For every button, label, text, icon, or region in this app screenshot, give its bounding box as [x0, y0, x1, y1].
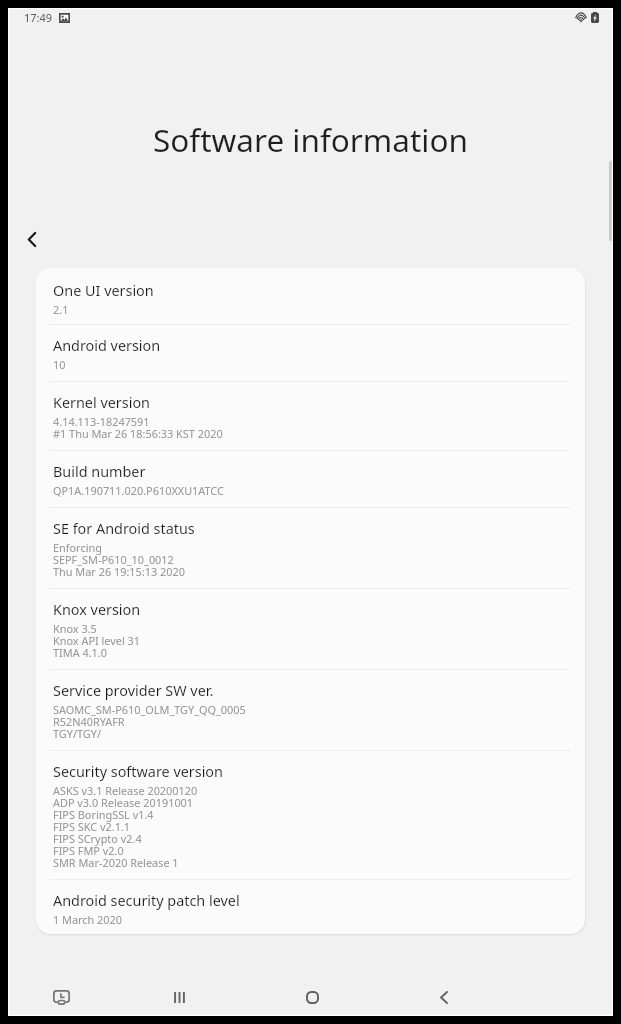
staticText: 10	[53, 357, 66, 372]
button[interactable]: Kernel version	[36, 382, 585, 451]
staticText: Knox version	[53, 600, 141, 620]
staticText: 4.14.113-18247591 #1 Thu Mar 26 18:56:33…	[53, 414, 223, 441]
staticText: QP1A.190711.020.P610XXU1ATCC	[53, 483, 224, 498]
staticText: 2.1	[53, 302, 69, 317]
staticText: 17:49	[24, 10, 53, 25]
button[interactable]: Home	[288, 973, 336, 1021]
staticText: Enforcing SEPF_SM-P610_10_0012 Thu Mar 2…	[53, 540, 185, 579]
staticText: SAOMC_SM-P610_OLM_TGY_QQ_0005 R52N40RYAF…	[53, 702, 246, 741]
button[interactable]: Android version	[36, 325, 585, 382]
staticText: ASKS v3.1 Release 20200120 ADP v3.0 Rele…	[53, 783, 198, 870]
staticText: Software information	[153, 118, 468, 161]
staticText: Build number	[53, 462, 146, 482]
button[interactable]: Screenshot	[37, 973, 85, 1021]
staticText: Android security patch level	[53, 891, 240, 911]
staticText: Service provider SW ver.	[53, 681, 214, 701]
button[interactable]: Back	[9, 216, 55, 262]
staticText: One UI version	[53, 281, 154, 301]
button[interactable]: Security software version	[36, 751, 585, 880]
staticText: Kernel version	[53, 393, 151, 413]
button[interactable]: Service provider SW ver.	[36, 670, 585, 751]
staticText: Knox 3.5 Knox API level 31 TIMA 4.1.0	[53, 621, 141, 660]
staticText: Android version	[53, 336, 161, 356]
button[interactable]: Build number	[36, 451, 585, 508]
button[interactable]: SE for Android status	[36, 508, 585, 589]
staticText: 1 March 2020	[53, 912, 123, 927]
staticText: Security software version	[53, 762, 223, 782]
button[interactable]: Android security patch level	[36, 880, 585, 934]
button[interactable]: One UI version	[36, 268, 585, 325]
button[interactable]: Back	[420, 973, 468, 1021]
button[interactable]: Recents	[155, 973, 203, 1021]
button[interactable]: Knox version	[36, 589, 585, 670]
staticText: SE for Android status	[53, 519, 195, 539]
